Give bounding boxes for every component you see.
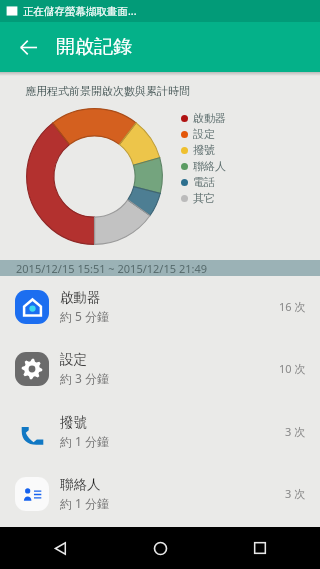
staticText: 電話: [193, 175, 215, 189]
staticText: 約 1 分鐘: [60, 495, 110, 511]
button[interactable]: Back: [0, 527, 120, 569]
button[interactable]: Home: [120, 527, 200, 569]
staticText: 約 5 分鐘: [60, 308, 110, 324]
button[interactable]: 設定: [0, 337, 320, 400]
button[interactable]: 撥號: [0, 400, 320, 463]
staticText: 3 次: [285, 486, 306, 501]
staticText: 撥號: [60, 414, 87, 431]
staticText: 聯絡人: [60, 476, 101, 493]
staticText: 2015/12/15 15:51 ~ 2015/12/15 21:49: [16, 261, 208, 276]
staticText: 正在儲存螢幕擷取畫面...: [23, 4, 137, 18]
staticText: 其它: [193, 191, 215, 205]
staticText: 啟動器: [60, 289, 101, 306]
staticText: 約 3 分鐘: [60, 370, 110, 386]
button[interactable]: 啟動器: [0, 275, 320, 338]
staticText: 聯絡人: [193, 159, 226, 173]
staticText: 應用程式前景開啟次數與累計時間: [25, 84, 190, 98]
staticText: 10 次: [279, 361, 306, 376]
staticText: 設定: [193, 127, 215, 141]
button[interactable]: Recent apps: [200, 527, 320, 569]
button[interactable]: Back: [6, 22, 50, 72]
staticText: 3 次: [285, 424, 306, 439]
staticText: 開啟記錄: [56, 35, 132, 59]
staticText: 設定: [60, 351, 87, 368]
staticText: 撥號: [193, 143, 215, 157]
button[interactable]: 聯絡人: [0, 462, 320, 525]
staticText: 啟動器: [193, 111, 226, 125]
staticText: 約 1 分鐘: [60, 433, 110, 449]
staticText: 16 次: [279, 299, 306, 314]
